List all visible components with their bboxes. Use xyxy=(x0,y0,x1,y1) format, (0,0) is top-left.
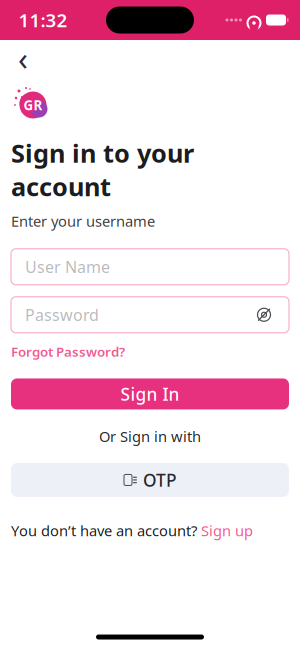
staticText: Password xyxy=(25,304,99,325)
staticText: User Name xyxy=(25,256,110,277)
staticText: Sign in to your account xyxy=(11,136,194,203)
button[interactable]: OTP xyxy=(0,463,300,497)
staticText: Or Sign in with xyxy=(99,426,201,446)
staticText: Forgot Password? xyxy=(11,343,125,360)
staticText: ‹ xyxy=(18,37,28,79)
staticText: Enter your username xyxy=(11,211,155,231)
staticText: You don’t have an account? xyxy=(11,521,201,540)
button[interactable]: Sign up xyxy=(201,518,253,543)
staticText: Sign In xyxy=(120,382,179,405)
staticText: OTP xyxy=(143,468,177,491)
staticText: GR xyxy=(23,96,42,114)
button[interactable]: Forgot Password? xyxy=(0,339,136,364)
button[interactable]: Back xyxy=(6,41,40,75)
staticText: 11:32 xyxy=(18,8,67,32)
staticText: Sign up xyxy=(201,521,253,540)
button[interactable]: Show password xyxy=(253,304,275,326)
button[interactable]: Sign In xyxy=(0,378,300,409)
